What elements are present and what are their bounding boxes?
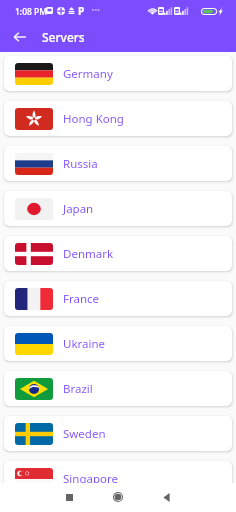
button[interactable]: Germany [4, 56, 232, 91]
button[interactable]: Recent apps [59, 487, 79, 507]
button[interactable]: Denmark [4, 236, 232, 271]
button[interactable]: Singapore [4, 461, 232, 496]
button[interactable]: Japan [4, 191, 232, 226]
button[interactable]: Back [8, 25, 32, 49]
button[interactable]: Sweden [4, 416, 232, 451]
button[interactable]: Back [156, 487, 176, 507]
staticText: Singapore [63, 471, 118, 487]
staticText: Hong Kong [63, 111, 124, 127]
staticText: Germany [63, 66, 113, 82]
staticText: Sweden [63, 426, 106, 442]
staticText: Servers [42, 29, 85, 45]
staticText: Denmark [63, 246, 114, 262]
button[interactable]: France [4, 281, 232, 316]
staticText: 1:08 PM [15, 6, 48, 18]
button[interactable]: Ukraine [4, 326, 232, 361]
staticText: Ukraine [63, 336, 106, 352]
staticText: P [78, 4, 85, 18]
button[interactable]: Brazil [4, 371, 232, 406]
staticText: Brazil [63, 381, 93, 397]
button[interactable]: Home [108, 487, 128, 507]
button[interactable]: Hong Kong [4, 101, 232, 136]
button[interactable]: Russia [4, 146, 232, 181]
staticText: France [63, 291, 100, 307]
staticText: Japan [63, 201, 94, 217]
staticText: Russia [63, 156, 98, 172]
